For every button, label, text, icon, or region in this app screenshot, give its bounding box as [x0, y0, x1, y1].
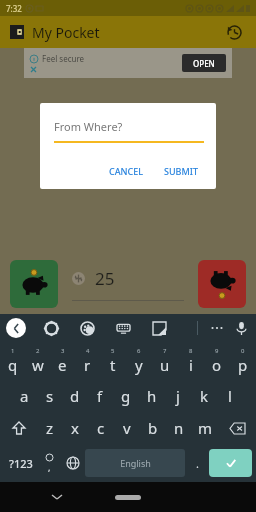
button[interactable]: History — [222, 20, 246, 44]
staticText: , — [48, 461, 51, 473]
staticText: y — [135, 355, 143, 375]
staticText: ?123 — [9, 456, 33, 471]
button[interactable]: 1 — [0, 342, 25, 380]
button[interactable]: Stickers — [150, 319, 168, 337]
button[interactable]: Theme — [78, 319, 96, 337]
button[interactable]: d — [62, 380, 87, 412]
button[interactable]: g — [113, 380, 139, 412]
staticText: k — [200, 386, 209, 406]
button[interactable]: c — [88, 412, 114, 444]
staticText: 8 — [189, 347, 193, 355]
staticText: 6 — [137, 347, 141, 355]
staticText: f — [97, 386, 103, 406]
other: App logo — [10, 25, 24, 39]
staticText: 7:32 — [6, 3, 22, 14]
staticText: s — [46, 386, 54, 406]
staticText: CANCEL — [109, 165, 144, 177]
button[interactable]: Withdraw — [198, 260, 246, 308]
button[interactable]: m — [192, 412, 218, 444]
staticText: h — [147, 386, 157, 406]
button[interactable]: z — [37, 412, 62, 444]
staticText: i — [189, 355, 193, 375]
button[interactable]: n — [166, 412, 192, 444]
button[interactable]: Change language — [61, 449, 85, 477]
button[interactable]: h — [139, 380, 165, 412]
button[interactable]: ?123 — [4, 449, 37, 477]
button[interactable]: 9 — [204, 342, 230, 380]
staticText: w — [32, 355, 44, 375]
staticText: From Where? — [54, 119, 123, 134]
button[interactable]: b — [140, 412, 166, 444]
staticText: 1 — [11, 347, 15, 355]
staticText: v — [123, 418, 131, 438]
staticText: l — [228, 386, 232, 406]
staticText: e — [58, 355, 67, 375]
staticText: English — [120, 457, 151, 469]
button[interactable]: 0 — [230, 342, 256, 380]
button[interactable]: 4 — [75, 342, 100, 380]
button[interactable]: a — [12, 380, 37, 412]
button[interactable]: Voice input — [232, 319, 250, 337]
staticText: t — [110, 355, 116, 375]
staticText: a — [20, 386, 29, 406]
staticText: c — [97, 418, 105, 438]
staticText: 25 — [95, 267, 115, 290]
staticText: r — [84, 355, 91, 375]
staticText: My Pocket — [32, 23, 100, 42]
button[interactable]: 8 — [178, 342, 204, 380]
staticText: x — [71, 418, 79, 438]
staticText: Feel secure — [42, 53, 85, 64]
button[interactable]: OPEN — [182, 54, 226, 72]
staticText: n — [174, 418, 184, 438]
button[interactable]: k — [191, 380, 217, 412]
button[interactable]: f — [87, 380, 113, 412]
button[interactable]: 7 — [152, 342, 178, 380]
button[interactable]: Deposit — [10, 260, 58, 308]
button[interactable]: Settings — [42, 319, 60, 337]
button[interactable]: Hide keyboard — [48, 488, 66, 506]
staticText: 7 — [163, 347, 167, 355]
staticText: SUBMIT — [164, 165, 198, 177]
button[interactable]: English — [85, 449, 185, 477]
staticText: p — [238, 355, 248, 375]
button[interactable]: Shift — [0, 412, 37, 444]
staticText: 9 — [215, 347, 219, 355]
button[interactable]: Keyboard layout — [114, 319, 132, 337]
staticText: 0 — [241, 347, 245, 355]
button[interactable]: l — [217, 380, 243, 412]
staticText: 2 — [36, 347, 40, 355]
button[interactable]: 5 — [100, 342, 126, 380]
staticText: z — [46, 418, 54, 438]
button[interactable]: Back — [6, 318, 26, 338]
staticText: OPEN — [193, 58, 215, 69]
staticText: b — [148, 418, 158, 438]
staticText: q — [8, 355, 18, 375]
button[interactable]: . — [185, 449, 209, 477]
button[interactable]: Backspace — [218, 412, 256, 444]
staticText: . — [196, 456, 199, 471]
button[interactable]: CANCEL — [103, 161, 150, 181]
staticText: g — [121, 386, 131, 406]
other: Ad info — [30, 55, 38, 63]
button[interactable]: SUBMIT — [158, 161, 204, 181]
button[interactable]: Emoji — [37, 449, 61, 477]
staticText: 4 — [86, 347, 90, 355]
staticText: 3 — [61, 347, 65, 355]
button[interactable]: x — [62, 412, 88, 444]
button[interactable]: More options — [208, 319, 226, 337]
button[interactable]: 3 — [50, 342, 75, 380]
button[interactable]: Home — [115, 495, 141, 500]
button[interactable]: s — [37, 380, 62, 412]
button[interactable]: v — [114, 412, 140, 444]
staticText: o — [212, 355, 222, 375]
staticText: u — [160, 355, 170, 375]
button[interactable]: 2 — [25, 342, 50, 380]
staticText: 5 — [111, 347, 115, 355]
button[interactable]: j — [165, 380, 191, 412]
staticText: j — [176, 386, 180, 406]
staticText: m — [198, 418, 213, 438]
button[interactable]: Enter — [209, 449, 252, 477]
staticText: d — [70, 386, 80, 406]
button[interactable]: 6 — [126, 342, 152, 380]
button[interactable]: Close ad — [30, 66, 37, 73]
